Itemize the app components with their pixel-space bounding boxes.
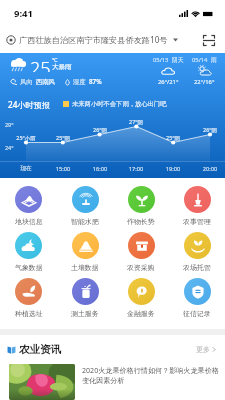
- staticText: 地块信息: [15, 217, 43, 226]
- staticText: 22°/16°: [194, 78, 215, 86]
- staticText: 16:00: [85, 165, 115, 173]
- button[interactable]: 作物长势: [113, 186, 169, 226]
- staticText: ℃: [52, 56, 58, 63]
- staticText: 26°/21°: [158, 78, 179, 86]
- staticText: 雨: [211, 56, 217, 63]
- staticText: 农场托管: [183, 263, 211, 272]
- staticText: 2020火龙果价格行情如何？影响火龙果价格变化因素分析: [82, 365, 220, 385]
- staticText: 广西壮族自治区南宁市隆安县侨友路10号: [19, 34, 168, 45]
- button[interactable]: 05/13: [146, 56, 190, 86]
- staticText: 05/13: [153, 56, 169, 64]
- button[interactable]: 金融服务: [113, 278, 169, 318]
- button[interactable]: 农事管理: [169, 186, 225, 226]
- staticText: 25°小雨: [11, 134, 41, 141]
- staticText: 87%: [89, 77, 102, 86]
- staticText: 27°阴: [121, 118, 151, 125]
- button[interactable]: 农资采购: [113, 232, 169, 272]
- staticText: 征信记录: [183, 309, 211, 318]
- staticText: 风向: [20, 78, 33, 86]
- button[interactable]: 更多: [196, 345, 216, 354]
- staticText: 西南风: [36, 78, 55, 86]
- staticText: 25°阴: [48, 134, 78, 141]
- staticText: 26°阴: [195, 126, 225, 133]
- staticText: 农事管理: [183, 217, 211, 226]
- button[interactable]: 05/14: [182, 56, 225, 86]
- staticText: 05/14: [192, 56, 208, 64]
- staticText: 更多: [196, 345, 210, 354]
- staticText: 17:00: [121, 165, 151, 173]
- button[interactable]: 土壤数据: [57, 232, 113, 272]
- staticText: 农资采购: [127, 263, 155, 272]
- button[interactable]: 测土服务: [57, 278, 113, 318]
- staticText: 25: [30, 56, 51, 72]
- staticText: 15:00: [48, 165, 78, 173]
- button[interactable]: 种植选址: [0, 278, 57, 318]
- staticText: 现在: [11, 165, 41, 172]
- staticText: 金融服务: [127, 309, 155, 318]
- staticText: 29°: [5, 121, 14, 128]
- staticText: 未来两小时不会下雨，放心出门吧: [72, 100, 167, 108]
- staticText: 农业资讯: [19, 343, 62, 356]
- staticText: 9:41: [14, 7, 33, 20]
- staticText: 25°阴: [158, 134, 188, 141]
- staticText: 测土服务: [71, 309, 99, 318]
- button[interactable]: 广西壮族自治区南宁市隆安县侨友路10号: [6, 34, 194, 45]
- staticText: 土壤数据: [71, 263, 99, 272]
- button[interactable]: 2020火龙果价格行情如何？影响火龙果价格变化因素分析: [9, 364, 220, 400]
- staticText: 种植选址: [15, 309, 43, 318]
- staticText: 20:00: [195, 165, 225, 173]
- staticText: 26°阴: [85, 126, 115, 133]
- staticText: 大暴雨: [52, 63, 72, 71]
- button[interactable]: 地块信息: [0, 186, 57, 226]
- button[interactable]: 气象数据: [0, 232, 57, 272]
- staticText: 智能水肥: [71, 217, 99, 226]
- staticText: 阴天: [172, 56, 184, 63]
- button[interactable]: 智能水肥: [57, 186, 113, 226]
- staticText: 24小时预报: [8, 99, 51, 110]
- staticText: 19:00: [158, 165, 188, 173]
- button[interactable]: Scan QR code: [200, 31, 218, 49]
- button[interactable]: 征信记录: [169, 278, 225, 318]
- staticText: 24°: [5, 144, 14, 151]
- button[interactable]: 农场托管: [169, 232, 225, 272]
- staticText: 湿度: [73, 78, 86, 86]
- staticText: 作物长势: [127, 217, 155, 226]
- staticText: 气象数据: [15, 263, 43, 272]
